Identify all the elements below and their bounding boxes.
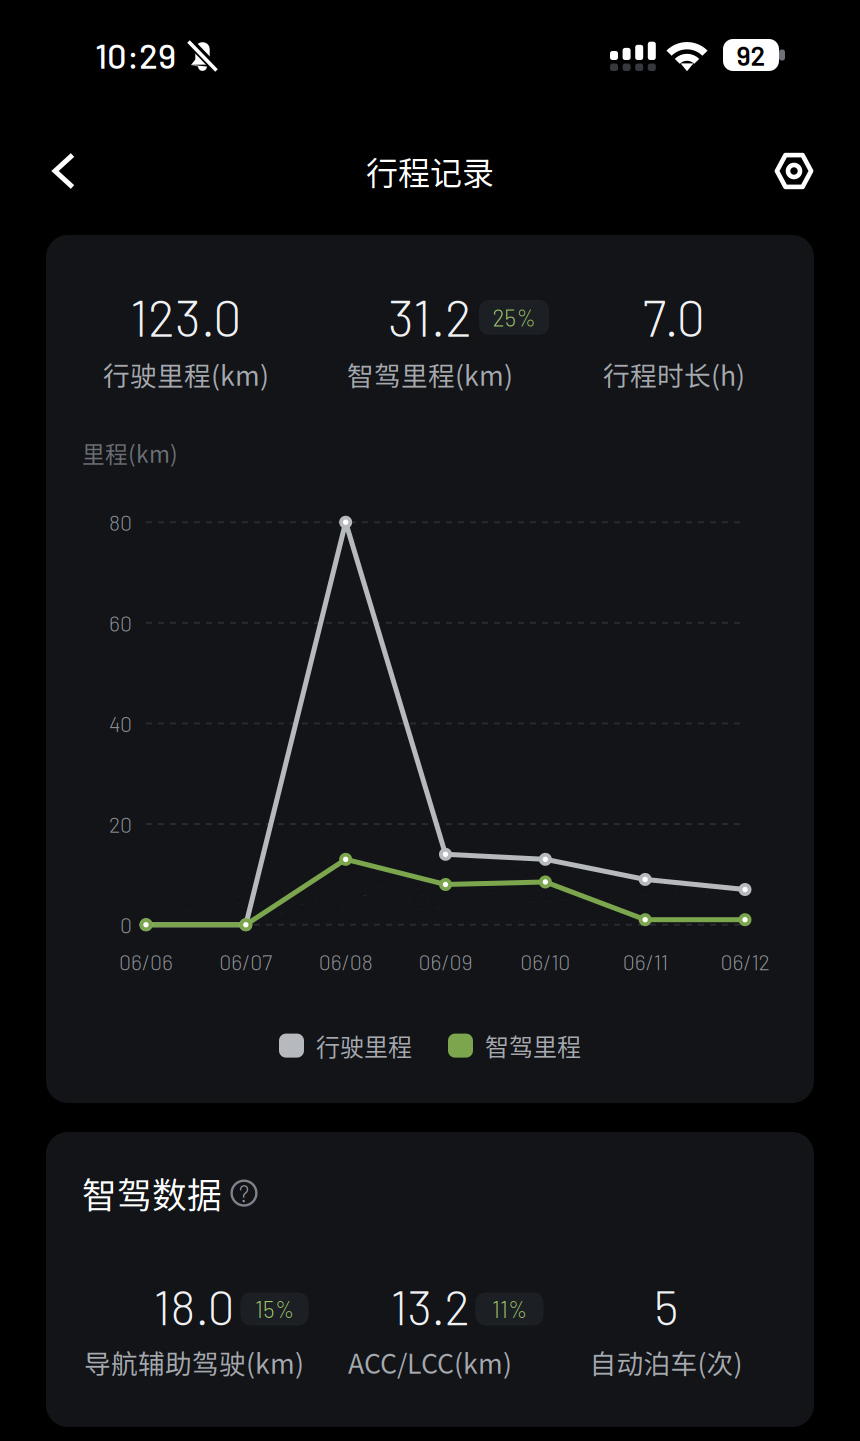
- staticText: 06/06: [119, 949, 173, 974]
- staticText: 行驶里程(km): [103, 355, 269, 393]
- button[interactable]: Settings: [752, 129, 836, 213]
- staticText: 123.0: [130, 286, 242, 347]
- staticText: 行驶里程: [316, 1028, 412, 1063]
- staticText: 智驾里程(km): [347, 355, 513, 393]
- staticText: 7.0: [642, 286, 705, 347]
- button[interactable]: Back: [22, 129, 106, 213]
- staticText: 06/07: [219, 949, 272, 974]
- staticText: 0: [120, 912, 132, 937]
- staticText: 5: [654, 1277, 678, 1335]
- staticText: 06/11: [623, 949, 668, 974]
- staticText: 25%: [492, 304, 535, 331]
- staticText: ?: [239, 1179, 249, 1207]
- staticText: 10:29: [95, 34, 176, 76]
- staticText: 06/10: [520, 949, 570, 974]
- staticText: 31.2: [388, 286, 472, 347]
- staticText: 行程记录: [366, 148, 494, 194]
- staticText: 11%: [492, 1295, 527, 1323]
- staticText: 行程时长(h): [603, 355, 745, 393]
- staticText: 智驾数据: [82, 1168, 222, 1218]
- staticText: ACC/LCC(km): [348, 1343, 512, 1381]
- staticText: 06/09: [418, 949, 472, 974]
- staticText: 06/08: [319, 949, 373, 974]
- staticText: 20: [109, 811, 132, 837]
- staticText: 06/12: [720, 949, 769, 974]
- staticText: 18.0: [153, 1277, 234, 1335]
- button[interactable]: About assisted driving data: [230, 1179, 258, 1207]
- staticText: 自动泊车(次): [589, 1343, 742, 1381]
- staticText: 80: [109, 509, 132, 535]
- staticText: 40: [109, 711, 132, 736]
- staticText: 60: [109, 610, 132, 636]
- staticText: 92: [736, 39, 765, 71]
- staticText: 15%: [255, 1295, 294, 1323]
- staticText: 导航辅助驾驶(km): [84, 1343, 304, 1381]
- staticText: 里程(km): [82, 436, 178, 469]
- staticText: 13.2: [390, 1277, 469, 1335]
- staticText: 智驾里程: [485, 1028, 581, 1063]
